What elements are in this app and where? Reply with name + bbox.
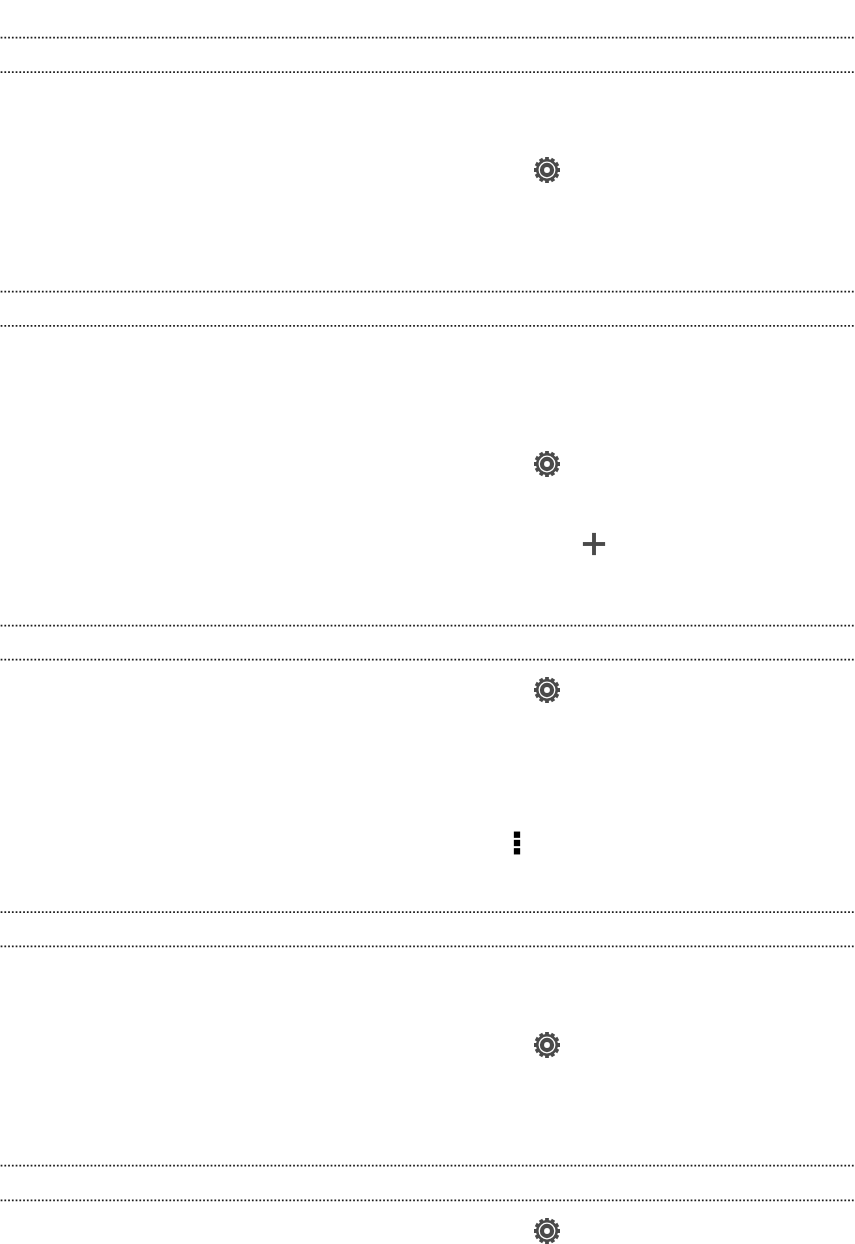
button[interactable]: Section header (0, 292, 855, 324)
button[interactable]: More options (507, 830, 527, 856)
button[interactable]: Notification settings (534, 1032, 560, 1058)
button[interactable]: Section header (0, 626, 855, 658)
button[interactable]: Account settings (534, 677, 560, 703)
button[interactable]: App bar (0, 38, 855, 70)
button[interactable]: Display settings (534, 451, 560, 477)
button[interactable]: Add item (581, 531, 607, 557)
button[interactable]: Advanced settings (534, 1218, 560, 1244)
button[interactable]: Settings (534, 157, 560, 183)
